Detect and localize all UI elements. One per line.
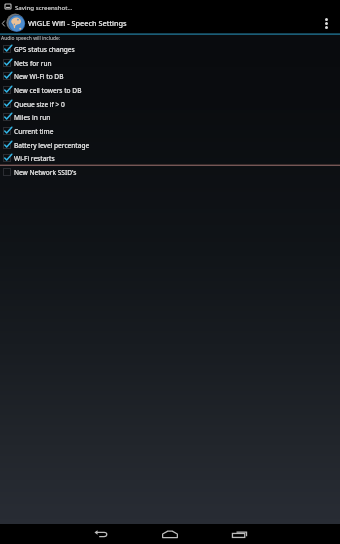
staticText: New Network SSID's xyxy=(14,168,77,177)
staticText: Audio speech will include: xyxy=(1,35,61,42)
button[interactable]: GPS status changes xyxy=(0,43,340,57)
staticText: GPS status changes xyxy=(14,45,75,54)
staticText: Current time xyxy=(14,127,54,136)
button[interactable]: Miles in run xyxy=(0,111,340,125)
button[interactable]: Back xyxy=(86,524,116,544)
button[interactable]: Home xyxy=(155,524,185,544)
staticText: Queue size if > 0 xyxy=(14,100,65,109)
button[interactable]: New Wi-Fi to DB xyxy=(0,70,340,84)
staticText: New Wi-Fi to DB xyxy=(14,72,64,81)
staticText: Battery level percentage xyxy=(14,141,90,150)
button[interactable]: New cell towers to DB xyxy=(0,84,340,98)
button[interactable]: Navigate up xyxy=(0,13,7,33)
button[interactable]: Nets for run xyxy=(0,57,340,71)
button[interactable]: Wi-Fi restarts xyxy=(0,152,340,166)
staticText: New cell towers to DB xyxy=(14,86,82,95)
staticText: Nets for run xyxy=(14,59,52,68)
staticText: Wi-Fi restarts xyxy=(14,154,55,163)
button[interactable]: Current time xyxy=(0,125,340,139)
staticText: WiGLE Wifi - Speech Settings xyxy=(28,18,127,28)
button[interactable]: Battery level percentage xyxy=(0,139,340,153)
staticText: Saving screenshot… xyxy=(15,3,73,11)
staticText: Miles in run xyxy=(14,113,51,122)
button[interactable]: Recent apps xyxy=(224,524,254,544)
button[interactable]: Queue size if > 0 xyxy=(0,98,340,112)
button[interactable]: New Network SSID's xyxy=(0,166,340,180)
button[interactable]: More options xyxy=(315,13,337,33)
